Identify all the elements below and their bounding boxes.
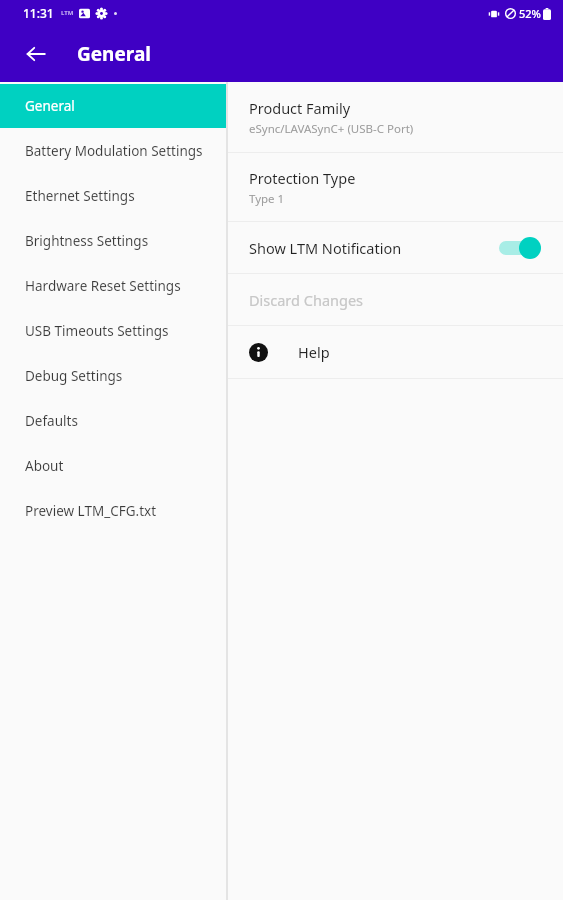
button[interactable]: Defaults — [0, 398, 226, 443]
button[interactable]: Discard Changes — [228, 274, 563, 325]
staticText: About — [25, 457, 64, 475]
button[interactable]: Battery Modulation Settings — [0, 128, 226, 173]
staticText: Preview LTM_CFG.txt — [25, 502, 157, 520]
staticText: Help — [298, 342, 330, 362]
button[interactable]: Hardware Reset Settings — [0, 263, 226, 308]
button[interactable]: Help — [228, 326, 563, 378]
button[interactable]: Show LTM Notification — [228, 222, 563, 273]
staticText: Ethernet Settings — [25, 187, 135, 205]
staticText: General — [25, 97, 75, 115]
staticText: Brightness Settings — [25, 232, 149, 250]
staticText: Discard Changes — [249, 290, 364, 310]
button[interactable]: USB Timeouts Settings — [0, 308, 226, 353]
staticText: Battery Modulation Settings — [25, 142, 203, 160]
staticText: Hardware Reset Settings — [25, 277, 181, 295]
staticText: 52% — [519, 6, 541, 21]
staticText: Product Family — [249, 98, 351, 118]
button[interactable]: General — [0, 84, 226, 128]
button[interactable]: Brightness Settings — [0, 218, 226, 263]
staticText: Debug Settings — [25, 367, 123, 385]
staticText: eSync/LAVASynC+ (USB-C Port) — [249, 121, 414, 137]
staticText: Protection Type — [249, 168, 356, 188]
button[interactable]: Ethernet Settings — [0, 173, 226, 218]
button[interactable]: About — [0, 443, 226, 488]
staticText: Defaults — [25, 412, 78, 430]
staticText: Type 1 — [249, 191, 285, 207]
button[interactable]: Debug Settings — [0, 353, 226, 398]
staticText: LTM — [61, 9, 74, 17]
button[interactable]: Back — [16, 34, 56, 74]
button[interactable]: Preview LTM_CFG.txt — [0, 488, 226, 533]
staticText: Show LTM Notification — [249, 238, 497, 258]
staticText: USB Timeouts Settings — [25, 322, 169, 340]
button[interactable]: Product Family — [228, 82, 563, 152]
staticText: General — [77, 41, 151, 67]
staticText: 11:31 — [23, 5, 54, 21]
button[interactable]: Protection Type — [228, 153, 563, 221]
